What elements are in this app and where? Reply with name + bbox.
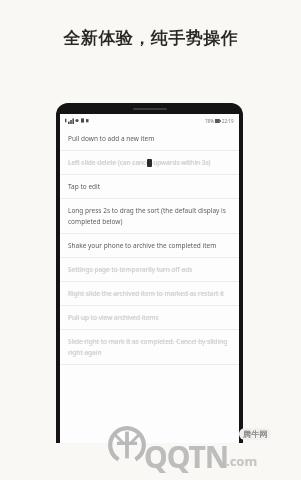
staticText: 腾牛网 — [243, 429, 267, 439]
button[interactable]: Tap to edit — [60, 175, 239, 199]
staticText: .com — [226, 452, 258, 470]
staticText: Right slide the archived item to marked … — [68, 289, 225, 298]
staticText: Slide right to mark it as completed. Can… — [68, 337, 231, 357]
button[interactable]: Settings page to temporarily turn off ad… — [60, 258, 239, 282]
button[interactable]: Left slide delete (can cancel upwards wi… — [60, 151, 239, 175]
staticText: QQTN — [144, 436, 229, 477]
button[interactable]: Long press 2s to drag the sort (the defa… — [60, 199, 239, 234]
staticText: Left slide delete (can cancel upwards wi… — [68, 158, 211, 167]
other: Drag handle — [147, 159, 152, 167]
button[interactable]: Slide right to mark it as completed. Can… — [60, 330, 239, 365]
staticText: Shake your phone to archive the complete… — [68, 241, 217, 250]
button[interactable]: Pull up to view archived items — [60, 306, 239, 330]
staticText: 22:19 — [222, 118, 234, 124]
button[interactable]: Right slide the archived item to marked … — [60, 282, 239, 306]
staticText: 78% — [205, 118, 214, 124]
staticText: 全新体验，纯手势操作 — [0, 28, 301, 49]
button[interactable]: Shake your phone to archive the complete… — [60, 234, 239, 258]
staticText: Long press 2s to drag the sort (the defa… — [68, 206, 231, 226]
staticText: Settings page to temporarily turn off ad… — [68, 265, 193, 274]
staticText: Pull down to add a new item — [68, 134, 155, 143]
staticText: Tap to edit — [68, 182, 101, 191]
staticText: Pull up to view archived items — [68, 313, 159, 322]
button[interactable]: Pull down to add a new item — [60, 127, 239, 151]
